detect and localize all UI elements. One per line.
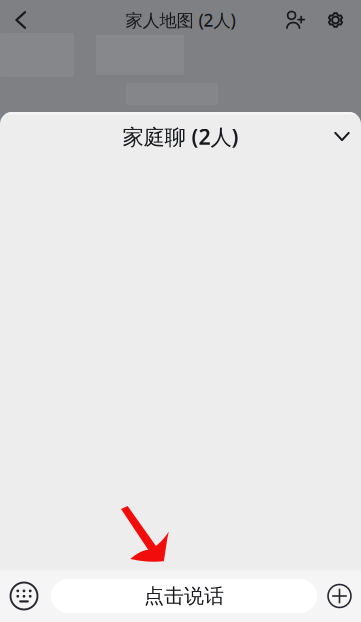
button[interactable]: Back [0,0,42,40]
staticText: 家庭聊 (2人) [122,122,238,151]
button[interactable]: Add member [275,0,315,40]
button[interactable]: 家庭聊 (2人) [0,114,361,158]
staticText: 家人地图 (2人) [125,8,235,31]
button[interactable]: 点击说话 [51,579,317,613]
staticText: 点击说话 [144,584,224,608]
button[interactable]: Settings [315,0,356,40]
button[interactable]: Keyboard [6,570,42,622]
button[interactable]: More [325,570,354,622]
